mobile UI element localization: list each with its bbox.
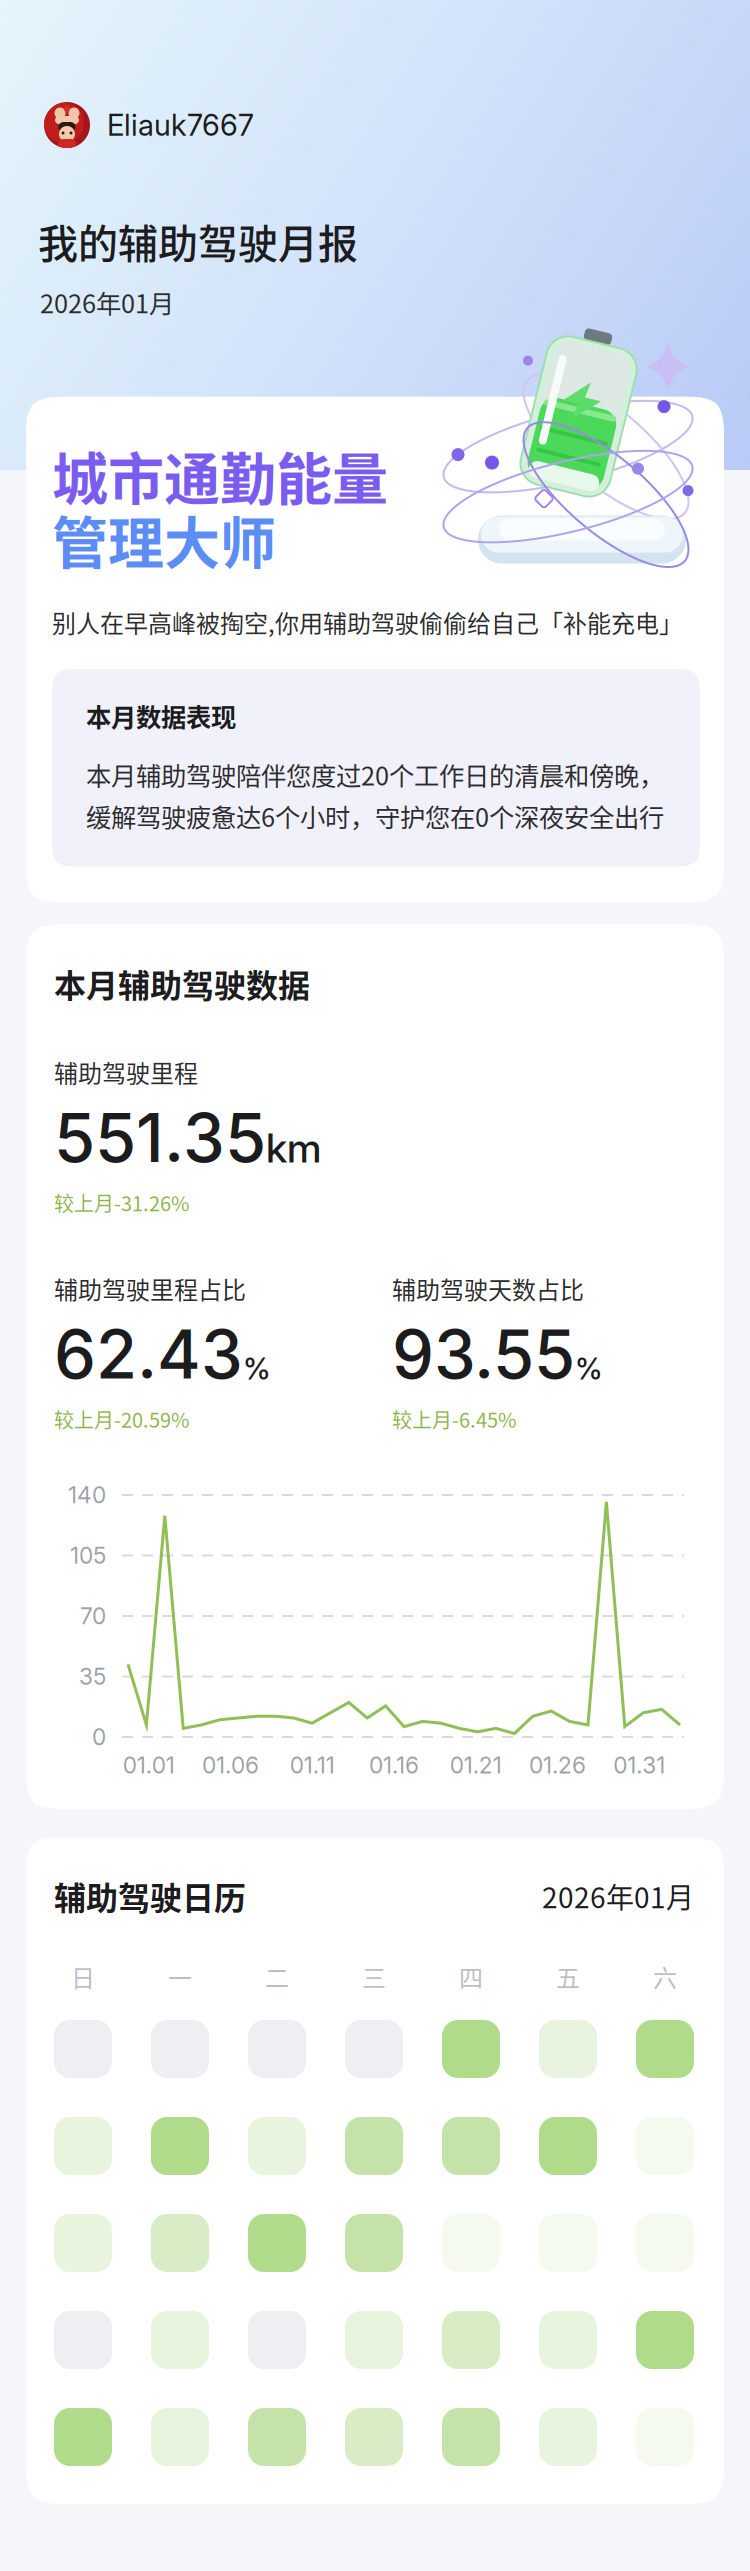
- staticText: 2026年01月: [542, 1876, 694, 1916]
- staticText: 01.26: [529, 1751, 586, 1779]
- staticText: 551.35: [54, 1097, 266, 1178]
- staticText: 辅助驾驶日历: [54, 1873, 246, 1919]
- staticText: 管理大师: [52, 499, 276, 580]
- staticText: 较上月-31.26%: [54, 1188, 189, 1217]
- staticText: 辅助驾驶里程: [54, 1055, 198, 1089]
- staticText: 六: [653, 1959, 677, 1994]
- staticText: %: [575, 1351, 603, 1386]
- staticText: Eliauk7667: [107, 107, 254, 143]
- staticText: 93.55: [392, 1314, 575, 1395]
- staticText: 62.43: [54, 1314, 243, 1395]
- staticText: 01.16: [369, 1751, 419, 1779]
- staticText: 城市通勤能量: [52, 435, 388, 516]
- staticText: %: [243, 1351, 271, 1386]
- staticText: 01.31: [613, 1751, 665, 1779]
- staticText: 2026年01月: [40, 284, 174, 321]
- button[interactable]: 用户头像: [44, 102, 90, 148]
- staticText: 较上月-20.59%: [54, 1404, 189, 1433]
- staticText: 01.21: [450, 1751, 502, 1779]
- staticText: 本月辅助驾驶陪伴您度过20个工作日的清晨和傍晚，: [86, 756, 664, 793]
- staticText: 较上月-6.45%: [392, 1404, 516, 1433]
- staticText: 辅助驾驶天数占比: [392, 1271, 584, 1306]
- staticText: 01.06: [202, 1751, 259, 1779]
- staticText: 二: [265, 1959, 289, 1994]
- staticText: 105: [70, 1542, 106, 1569]
- staticText: 0: [92, 1723, 106, 1751]
- staticText: 70: [80, 1602, 106, 1630]
- staticText: 一: [168, 1959, 192, 1994]
- staticText: 本月数据表现: [86, 697, 236, 734]
- staticText: 别人在早高峰被掏空,你用辅助驾驶偷偷给自己「补能充电」: [52, 605, 683, 639]
- staticText: 日: [71, 1959, 95, 1994]
- staticText: 辅助驾驶里程占比: [54, 1271, 246, 1306]
- staticText: 01.01: [123, 1751, 175, 1779]
- staticText: 01.11: [290, 1751, 335, 1779]
- staticText: 缓解驾驶疲惫达6个小时，守护您在0个深夜安全出行: [86, 798, 664, 834]
- staticText: km: [266, 1124, 321, 1172]
- staticText: 四: [459, 1959, 483, 1994]
- staticText: 我的辅助驾驶月报: [38, 212, 358, 270]
- staticText: 五: [556, 1959, 580, 1994]
- staticText: 三: [362, 1959, 386, 1994]
- staticText: 35: [79, 1663, 106, 1690]
- staticText: 140: [68, 1481, 106, 1509]
- staticText: 本月辅助驾驶数据: [54, 960, 310, 1007]
